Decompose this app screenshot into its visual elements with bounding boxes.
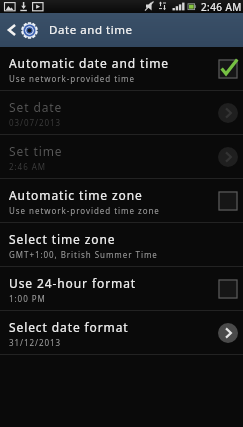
button[interactable]: Open xyxy=(217,102,239,124)
button[interactable]: Use 24-hour format xyxy=(0,267,243,311)
button[interactable]: Toggle xyxy=(217,58,239,80)
button[interactable]: Set time xyxy=(0,135,243,179)
staticText: Set date xyxy=(9,99,63,115)
staticText: 03/07/2013 xyxy=(9,117,62,128)
staticText: Select time zone xyxy=(9,231,116,247)
button[interactable]: Open xyxy=(217,146,239,168)
staticText: Use network-provided time xyxy=(9,73,135,84)
button[interactable]: Open xyxy=(217,322,239,344)
staticText: 31/12/2013 xyxy=(9,337,62,348)
staticText: Use network-provided time zone xyxy=(9,205,160,216)
staticText: Select date format xyxy=(9,319,129,335)
staticText: Set time xyxy=(9,143,63,159)
staticText: Date and time xyxy=(49,22,133,38)
staticText: 1:00 PM xyxy=(9,293,46,304)
staticText: 2:46 AM xyxy=(201,0,242,13)
button[interactable]: Automatic date and time xyxy=(0,47,243,91)
staticText: 2:46 AM xyxy=(9,161,46,172)
button[interactable]: Back xyxy=(0,13,21,47)
staticText: Automatic date and time xyxy=(9,55,170,71)
button[interactable]: Toggle xyxy=(217,278,239,300)
staticText: Use 24-hour format xyxy=(9,275,136,291)
button[interactable]: Automatic time zone xyxy=(0,179,243,223)
button[interactable]: Set date xyxy=(0,91,243,135)
staticText: Automatic time zone xyxy=(9,187,143,203)
button[interactable]: Toggle xyxy=(217,190,239,212)
staticText: GMT+1:00, British Summer Time xyxy=(9,249,158,260)
button[interactable]: Select date format xyxy=(0,311,243,355)
button[interactable]: Select time zone xyxy=(0,223,243,267)
